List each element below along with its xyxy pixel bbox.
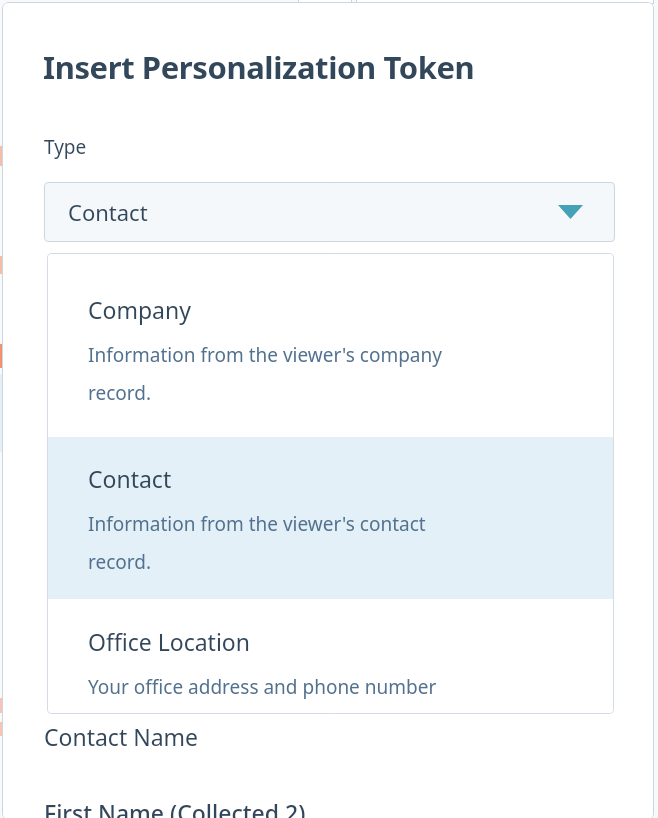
button[interactable]: Company (47, 253, 614, 437)
button[interactable]: Contact (44, 182, 615, 242)
staticText: Office Location (88, 626, 250, 657)
button[interactable]: Contact (47, 437, 614, 599)
staticText: Company (88, 294, 191, 325)
staticText: First Name (Collected 2) (44, 797, 306, 818)
staticText: Contact Name (44, 721, 199, 752)
staticText: Information from the viewer's contact (88, 511, 426, 537)
staticText: Information from the viewer's company (88, 342, 442, 368)
staticText: Insert Personalization Token (43, 46, 475, 88)
staticText: Type (44, 134, 87, 160)
staticText: Contact (68, 197, 148, 227)
staticText: record. (88, 380, 152, 406)
button[interactable]: Office Location (47, 599, 614, 712)
staticText: record. (88, 549, 152, 575)
other: Open type dropdown (558, 205, 583, 219)
staticText: Your office address and phone number (88, 674, 437, 700)
staticText: Contact (88, 463, 172, 494)
